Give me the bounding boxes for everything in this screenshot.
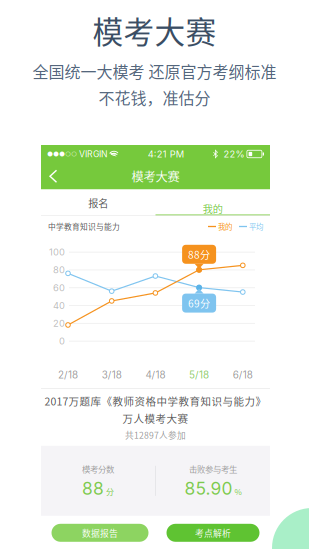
staticText: 数据报告: [82, 526, 118, 539]
staticText: 3/18: [102, 369, 122, 381]
button[interactable]: 报名: [41, 189, 155, 216]
staticText: 我的: [216, 221, 232, 232]
staticText: VIRGIN: [77, 149, 110, 159]
staticText: 考点解析: [195, 526, 231, 539]
button[interactable]: 我的: [155, 189, 270, 216]
staticText: 击败参与考生: [189, 463, 237, 475]
button[interactable]: 数据报告: [51, 524, 148, 542]
staticText: 100: [49, 246, 65, 258]
staticText: 报名: [88, 195, 108, 210]
staticText: 我的: [203, 201, 223, 216]
staticText: 不花钱，准估分: [98, 86, 210, 109]
staticText: 69分: [188, 296, 210, 310]
staticText: 5/18: [189, 369, 209, 381]
staticText: 中学教育知识与能力: [48, 221, 120, 232]
staticText: 0: [59, 335, 65, 347]
staticText: 4/18: [145, 369, 165, 381]
staticText: 2/18: [58, 369, 78, 381]
staticText: 22%: [217, 148, 244, 160]
staticText: 平均: [247, 221, 263, 232]
staticText: 2017万题库《教师资格中学教育知识与能力》: [44, 393, 266, 409]
button[interactable]: Back: [41, 163, 65, 189]
staticText: 20: [53, 318, 65, 329]
staticText: 88: [82, 478, 104, 499]
staticText: 88分: [188, 247, 210, 262]
staticText: ●●●: [47, 150, 65, 158]
staticText: 60: [53, 282, 65, 293]
staticText: 全国统一大模考 还原官方考纲标准: [32, 59, 276, 83]
staticText: 模考大赛: [92, 8, 216, 52]
button[interactable]: 考点解析: [166, 524, 259, 542]
staticText: 模考分数: [82, 463, 114, 475]
staticText: 共12897人参加: [125, 429, 186, 441]
staticText: 分: [106, 486, 114, 497]
staticText: 40: [53, 300, 65, 311]
staticText: 万人模考大赛: [122, 410, 188, 426]
staticText: 80: [53, 264, 65, 276]
staticText: %: [234, 486, 241, 497]
staticText: 4:21 PM: [148, 148, 184, 160]
staticText: 85.90: [184, 478, 232, 499]
staticText: 模考大赛: [131, 167, 179, 185]
staticText: 6/18: [233, 369, 253, 381]
staticText: ○○: [65, 150, 77, 158]
